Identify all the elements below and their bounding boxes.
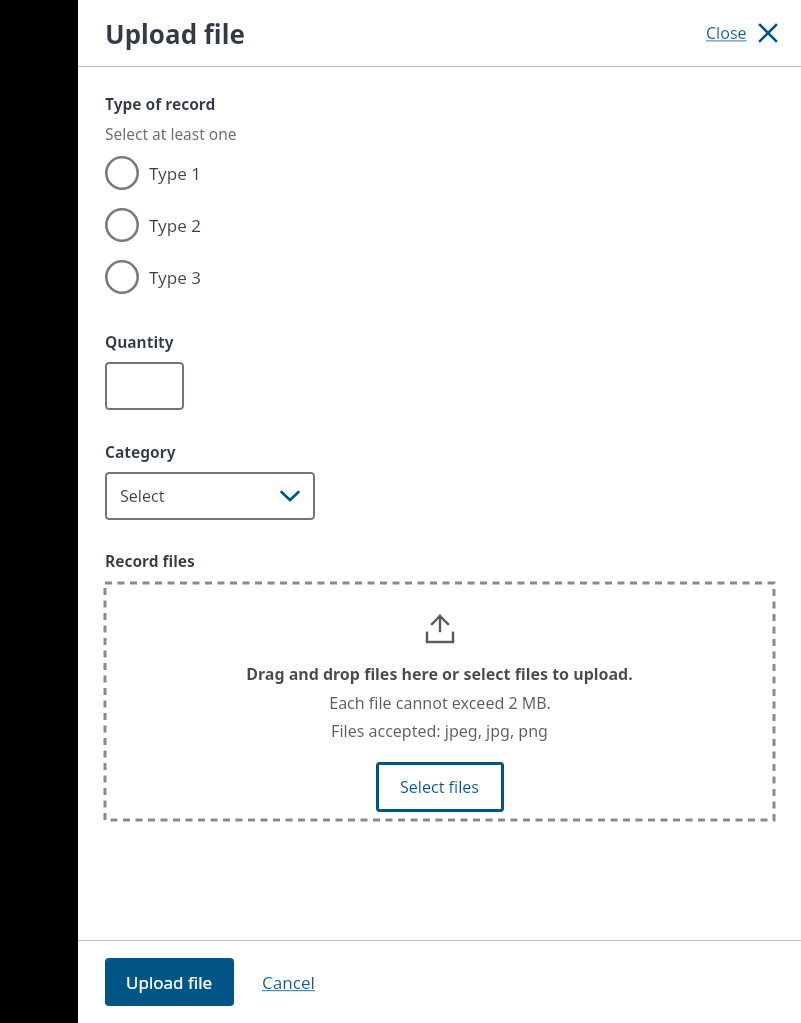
staticText: Upload file xyxy=(105,16,245,51)
button[interactable] xyxy=(105,362,184,410)
button[interactable]: Type 1 xyxy=(105,154,201,192)
staticText: Select at least one xyxy=(105,123,237,144)
button[interactable]: Select xyxy=(105,472,315,520)
staticText: Drag and drop files here or select files… xyxy=(246,663,633,685)
staticText: Type of record xyxy=(105,93,216,114)
staticText: Record files xyxy=(105,550,195,571)
staticText: Upload file xyxy=(126,971,213,994)
button[interactable]: Upload file xyxy=(105,958,234,1006)
other: Close xyxy=(759,24,777,42)
staticText: Select files xyxy=(400,776,480,798)
staticText: Close xyxy=(706,22,747,44)
button[interactable]: Drag and drop files here or select files… xyxy=(105,583,774,820)
staticText: Quantity xyxy=(105,331,174,352)
staticText: Files accepted: jpeg, jpg, png xyxy=(331,720,548,742)
button[interactable]: Cancel xyxy=(256,963,321,1002)
staticText: Select xyxy=(120,485,165,507)
staticText: Cancel xyxy=(262,971,315,994)
staticText: Type 2 xyxy=(149,214,201,237)
button[interactable]: Select files xyxy=(376,762,504,812)
button[interactable]: Type 2 xyxy=(105,206,201,244)
staticText: Type 3 xyxy=(149,266,201,289)
button[interactable]: Close xyxy=(702,16,781,50)
staticText: Type 1 xyxy=(149,162,201,185)
staticText: Category xyxy=(105,441,176,462)
button[interactable]: Type 3 xyxy=(105,258,201,296)
staticText: Each file cannot exceed 2 MB. xyxy=(329,692,551,714)
